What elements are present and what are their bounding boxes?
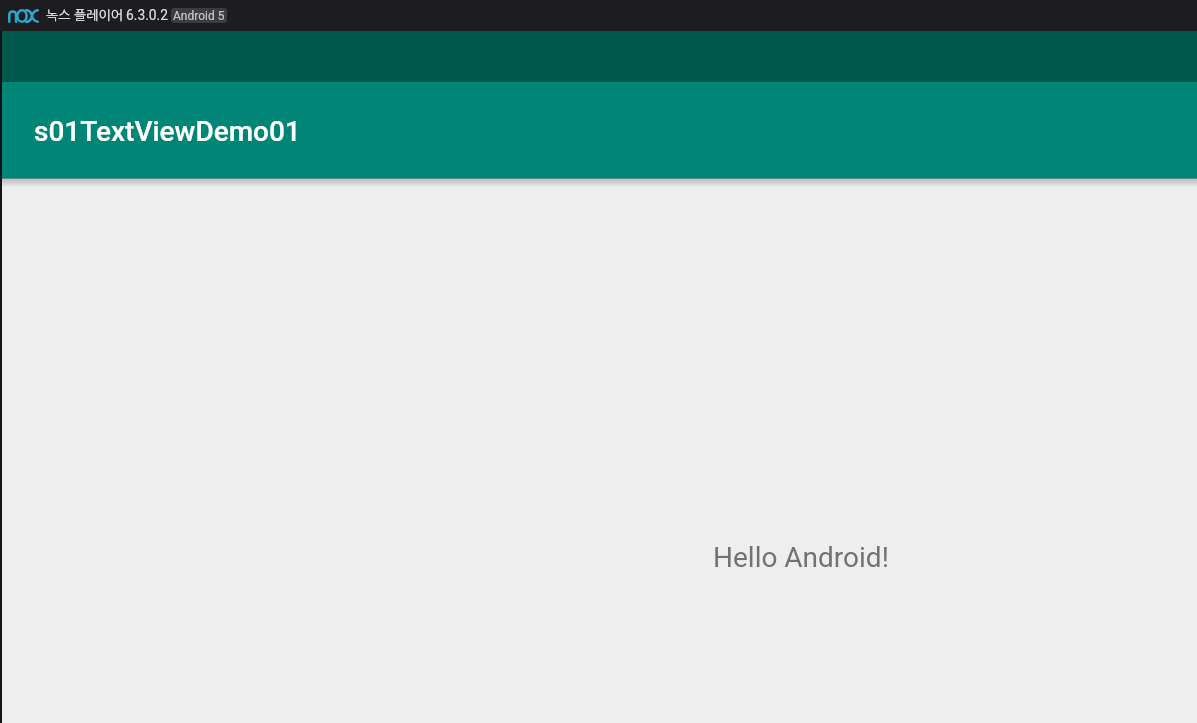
staticText: Android 5 xyxy=(173,9,225,23)
button[interactable]: Android 5 xyxy=(171,8,227,23)
staticText: Hello Android! xyxy=(713,541,889,574)
staticText: s01TextViewDemo01 xyxy=(34,115,301,148)
staticText: 6.3.0.2 xyxy=(126,7,168,23)
staticText: 녹스 플레이어 xyxy=(46,9,123,22)
button[interactable]: s01TextViewDemo01 xyxy=(2,82,1197,178)
button[interactable]: Nox Player xyxy=(8,9,39,23)
